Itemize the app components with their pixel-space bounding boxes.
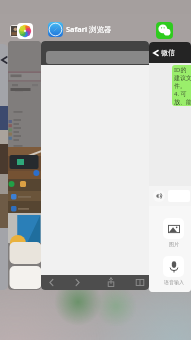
button[interactable]: Voice input (153, 190, 165, 202)
staticText: 语音输入 (164, 279, 184, 285)
staticText: Safari 浏览器 (66, 24, 112, 34)
button[interactable] (41, 275, 149, 290)
staticText: ID的 建议文 件。 4. 可 放、能 (174, 66, 191, 106)
button[interactable] (0, 44, 8, 290)
button[interactable]: Safari (48, 22, 63, 37)
button[interactable]: 微信 (149, 42, 191, 292)
button[interactable]: Photos (17, 23, 33, 39)
staticText: 微信 (161, 48, 175, 57)
button[interactable]: WeChat (156, 22, 173, 39)
button[interactable]: App (10, 25, 22, 37)
button[interactable] (8, 41, 41, 290)
button[interactable]: 语音输入 (163, 256, 184, 285)
button[interactable] (41, 41, 149, 290)
button[interactable]: 图片 (163, 218, 184, 247)
staticText: 图片 (169, 241, 179, 247)
button[interactable]: 微信 (149, 42, 191, 63)
